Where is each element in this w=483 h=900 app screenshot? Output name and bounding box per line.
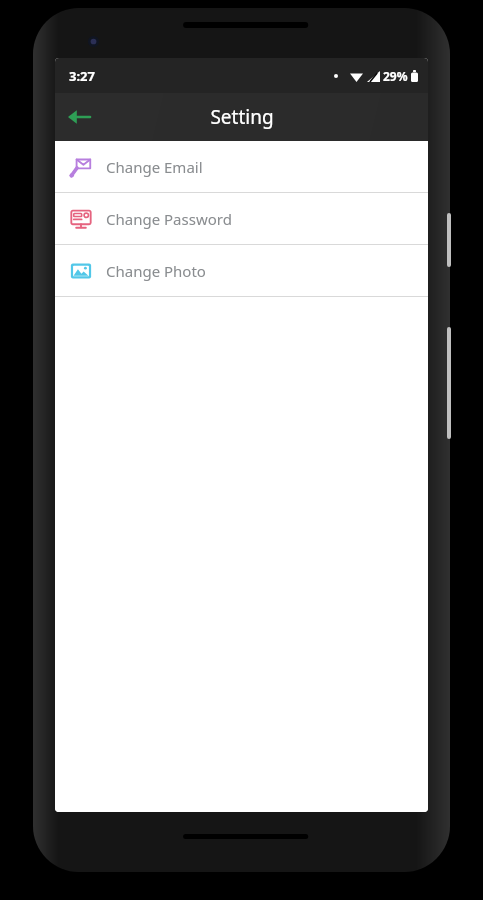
staticText: 3:27: [69, 67, 95, 85]
button[interactable]: Back: [55, 93, 103, 141]
staticText: 29%: [383, 68, 408, 84]
staticText: Change Password: [106, 209, 232, 229]
button[interactable]: Change Email: [55, 141, 428, 192]
button[interactable]: Change Photo: [55, 245, 428, 296]
button[interactable]: Change Password: [55, 193, 428, 244]
staticText: Change Email: [106, 157, 203, 177]
staticText: Change Photo: [106, 261, 206, 281]
staticText: Setting: [210, 104, 274, 130]
